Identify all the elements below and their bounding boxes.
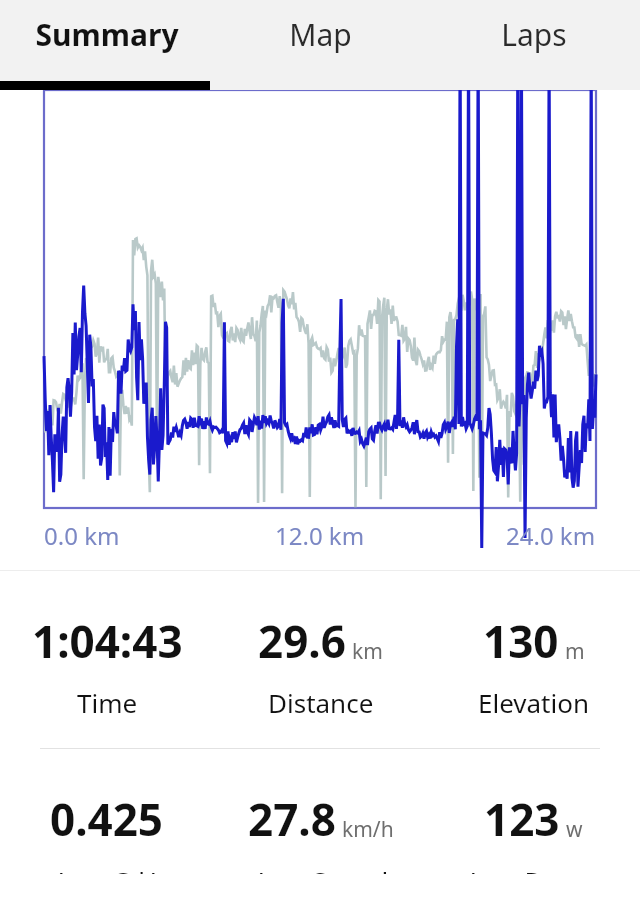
staticText: 130 — [483, 611, 559, 671]
staticText: Laps — [501, 14, 567, 55]
staticText: Avg. Speed — [253, 863, 389, 874]
staticText: km/h — [342, 815, 394, 844]
button[interactable]: Summary — [0, 0, 214, 90]
button[interactable]: 0.425 — [0, 789, 214, 874]
button[interactable]: 130 — [427, 611, 640, 720]
staticText: Avg. CdA — [53, 863, 162, 874]
staticText: 27.8 — [248, 789, 336, 849]
button[interactable]: 123 — [427, 789, 640, 874]
staticText: w — [566, 815, 583, 844]
staticText: 0.0 km — [44, 519, 120, 552]
staticText: Avg. Power — [465, 863, 602, 874]
staticText: 29.6 — [258, 611, 346, 671]
staticText: km — [352, 637, 383, 666]
staticText: 12.0 km — [275, 519, 365, 552]
staticText: m — [565, 637, 585, 666]
staticText: 1:04:43 — [32, 611, 183, 671]
staticText: Time — [77, 685, 138, 720]
staticText: 24.0 km — [506, 519, 596, 552]
staticText: 123 — [484, 789, 560, 849]
button[interactable]: 29.6 — [214, 611, 427, 720]
staticText: Distance — [268, 685, 374, 720]
staticText: 0.425 — [50, 789, 164, 849]
staticText: Map — [289, 14, 352, 55]
staticText: Elevation — [478, 685, 589, 720]
button[interactable]: Map — [214, 0, 427, 90]
staticText: Summary — [35, 14, 179, 55]
button[interactable]: 27.8 — [214, 789, 427, 874]
button[interactable]: 1:04:43 — [0, 611, 214, 720]
button[interactable]: Laps — [427, 0, 640, 90]
